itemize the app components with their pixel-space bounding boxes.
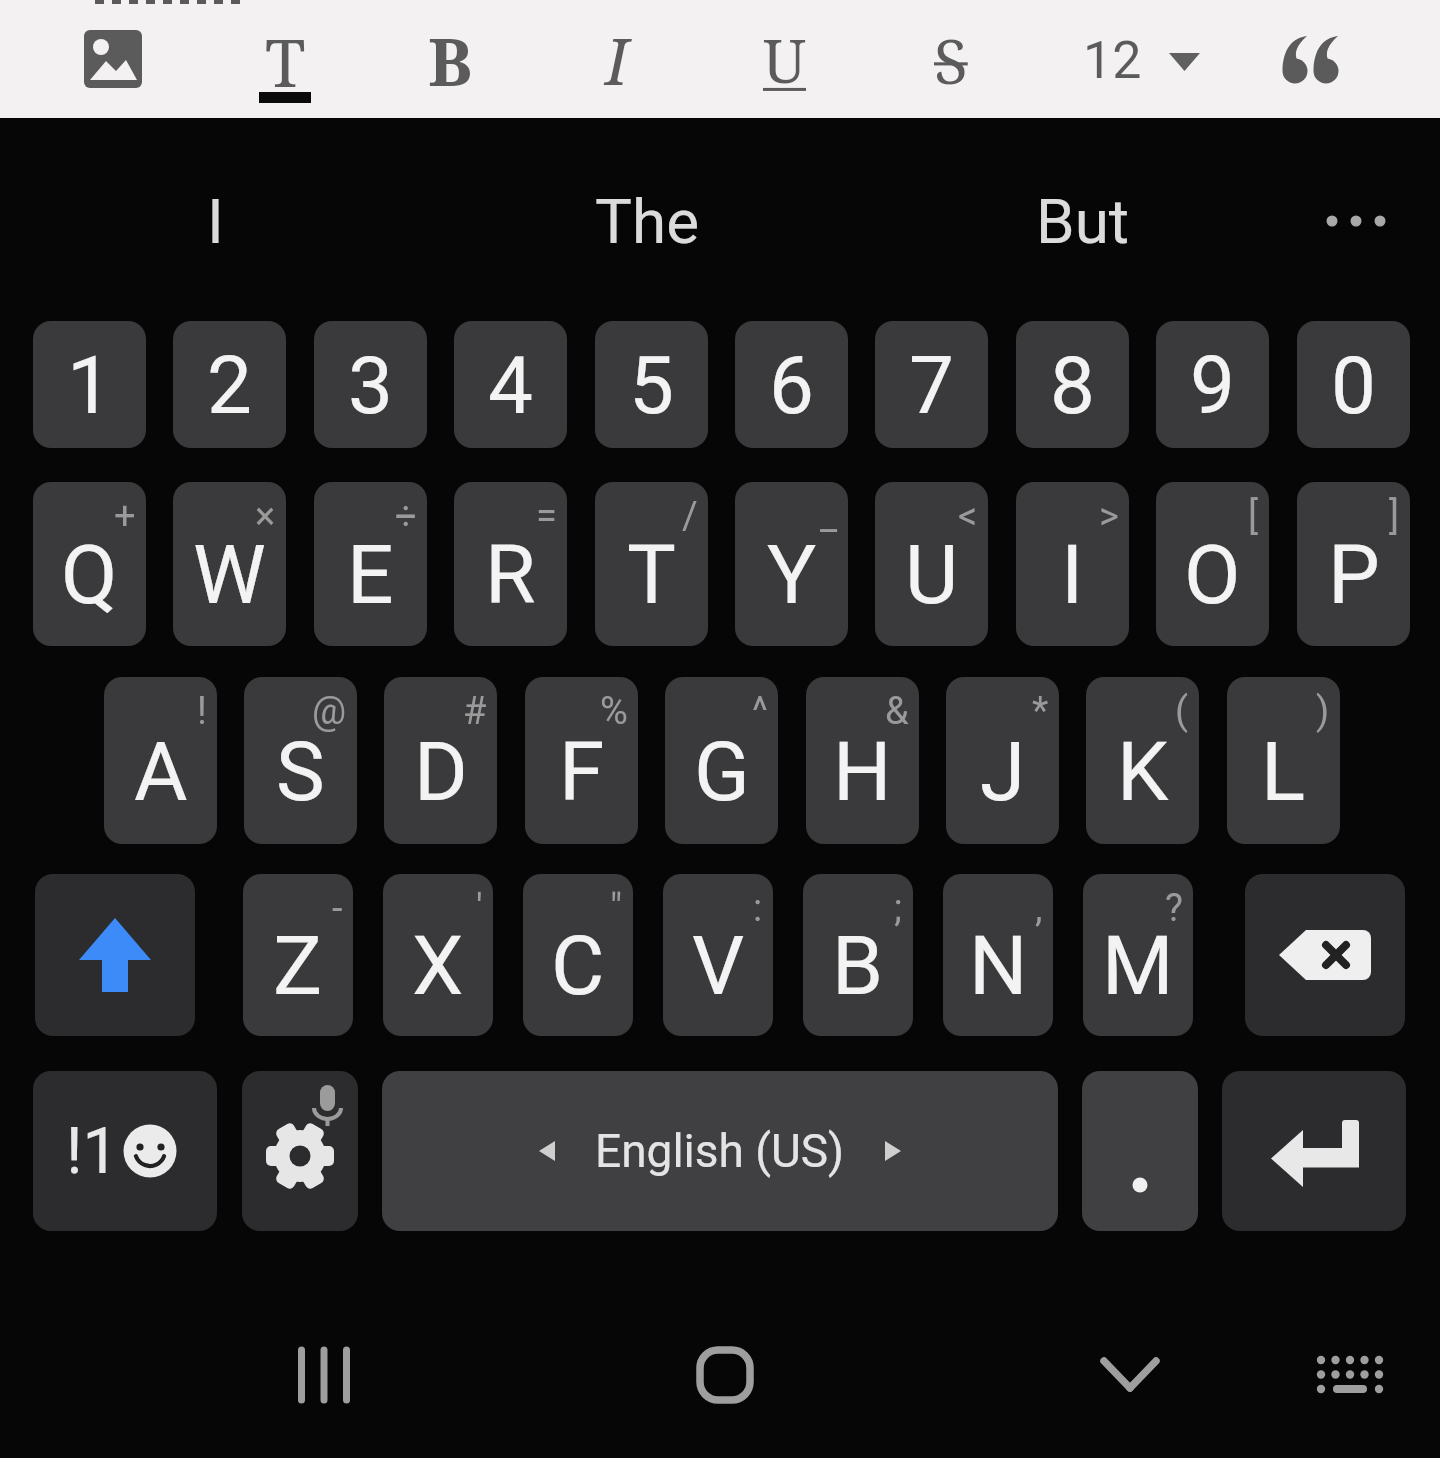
staticText: The xyxy=(595,185,700,258)
staticText: ) xyxy=(1316,689,1330,734)
staticText: I xyxy=(207,185,224,258)
staticText: N xyxy=(969,918,1028,1014)
button[interactable]: 0 xyxy=(1297,321,1410,448)
staticText: B xyxy=(428,15,473,105)
button[interactable]: 2 xyxy=(173,321,286,448)
button[interactable]: S xyxy=(244,677,357,844)
button[interactable] xyxy=(84,30,142,88)
staticText: % xyxy=(600,689,628,734)
button[interactable]: B xyxy=(415,14,485,106)
staticText: T xyxy=(627,527,676,623)
staticText: S xyxy=(934,18,968,102)
button[interactable]: 8 xyxy=(1016,321,1129,448)
button[interactable]: H xyxy=(806,677,919,844)
button[interactable]: I xyxy=(95,141,335,301)
staticText: L xyxy=(1261,724,1306,820)
button[interactable]: R xyxy=(454,482,567,646)
staticText: P xyxy=(1328,527,1380,623)
button[interactable]: V xyxy=(663,874,773,1036)
button[interactable]: X xyxy=(383,874,493,1036)
staticText: S xyxy=(276,724,325,820)
staticText: 6 xyxy=(769,339,814,433)
button[interactable]: 4 xyxy=(454,321,567,448)
button[interactable]: T xyxy=(595,482,708,646)
button[interactable]: 1 xyxy=(33,321,146,448)
button[interactable]: I xyxy=(582,14,652,106)
staticText: _ xyxy=(820,494,838,539)
staticText: / xyxy=(682,494,698,539)
staticText: F xyxy=(559,724,605,820)
button[interactable] xyxy=(1296,141,1416,301)
button[interactable]: I xyxy=(1016,482,1129,646)
button[interactable]: !1 xyxy=(33,1071,217,1231)
button[interactable]: 3 xyxy=(314,321,427,448)
staticText: = xyxy=(536,494,557,539)
button[interactable]: S xyxy=(916,14,986,106)
button[interactable]: N xyxy=(943,874,1053,1036)
staticText: C xyxy=(551,918,605,1014)
button[interactable]: G xyxy=(665,677,778,844)
button[interactable] xyxy=(242,1071,358,1231)
staticText: M xyxy=(1102,918,1174,1014)
staticText: & xyxy=(885,689,909,734)
button[interactable] xyxy=(35,874,195,1036)
button[interactable]: B xyxy=(803,874,913,1036)
button[interactable]: 7 xyxy=(875,321,988,448)
button[interactable]: English (US) xyxy=(382,1071,1058,1231)
staticText: E xyxy=(347,527,394,623)
staticText: : xyxy=(753,886,763,931)
staticText: ; xyxy=(894,886,903,931)
staticText: < xyxy=(958,494,978,539)
button[interactable]: L xyxy=(1227,677,1340,844)
staticText: G xyxy=(694,724,750,820)
button[interactable]: T xyxy=(250,14,320,106)
staticText: D xyxy=(414,724,468,820)
button[interactable]: C xyxy=(523,874,633,1036)
staticText: U xyxy=(763,19,807,101)
button[interactable]: E xyxy=(314,482,427,646)
button[interactable]: K xyxy=(1086,677,1199,844)
staticText: R xyxy=(485,527,536,623)
button[interactable]: Y xyxy=(735,482,848,646)
staticText: , xyxy=(1035,886,1043,931)
staticText: + xyxy=(114,494,136,539)
button[interactable] xyxy=(1300,1340,1400,1410)
staticText: I xyxy=(605,17,629,104)
button[interactable]: Q xyxy=(33,482,146,646)
staticText: 12 xyxy=(1083,30,1142,91)
button[interactable]: M xyxy=(1083,874,1193,1036)
button[interactable]: F xyxy=(525,677,638,844)
button[interactable]: 5 xyxy=(595,321,708,448)
staticText: 5 xyxy=(629,339,674,433)
button[interactable] xyxy=(270,1340,380,1410)
button[interactable]: P xyxy=(1297,482,1410,646)
button[interactable]: J xyxy=(946,677,1059,844)
staticText: @ xyxy=(312,689,347,734)
button[interactable] xyxy=(1245,874,1405,1036)
button[interactable]: Z xyxy=(243,874,353,1036)
staticText: ? xyxy=(1165,886,1183,931)
staticText: X xyxy=(412,918,464,1014)
staticText: ÷ xyxy=(395,494,417,539)
button[interactable]: A xyxy=(104,677,217,844)
button[interactable]: The xyxy=(477,141,817,301)
button[interactable]: But xyxy=(930,141,1236,301)
button[interactable]: 9 xyxy=(1156,321,1269,448)
button[interactable]: 12 xyxy=(1075,14,1205,106)
button[interactable]: U xyxy=(750,14,820,106)
staticText: K xyxy=(1117,724,1169,820)
button[interactable]: 6 xyxy=(735,321,848,448)
button[interactable] xyxy=(1082,1071,1198,1231)
staticText: [ xyxy=(1248,494,1259,539)
button[interactable] xyxy=(1222,1071,1406,1231)
button[interactable]: U xyxy=(875,482,988,646)
button[interactable] xyxy=(1282,36,1340,86)
button[interactable]: O xyxy=(1156,482,1269,646)
staticText: V xyxy=(692,918,745,1014)
staticText: - xyxy=(332,886,343,931)
button[interactable] xyxy=(1070,1340,1190,1410)
button[interactable]: W xyxy=(173,482,286,646)
staticText: J xyxy=(980,724,1026,820)
button[interactable] xyxy=(670,1340,780,1410)
button[interactable]: D xyxy=(384,677,497,844)
